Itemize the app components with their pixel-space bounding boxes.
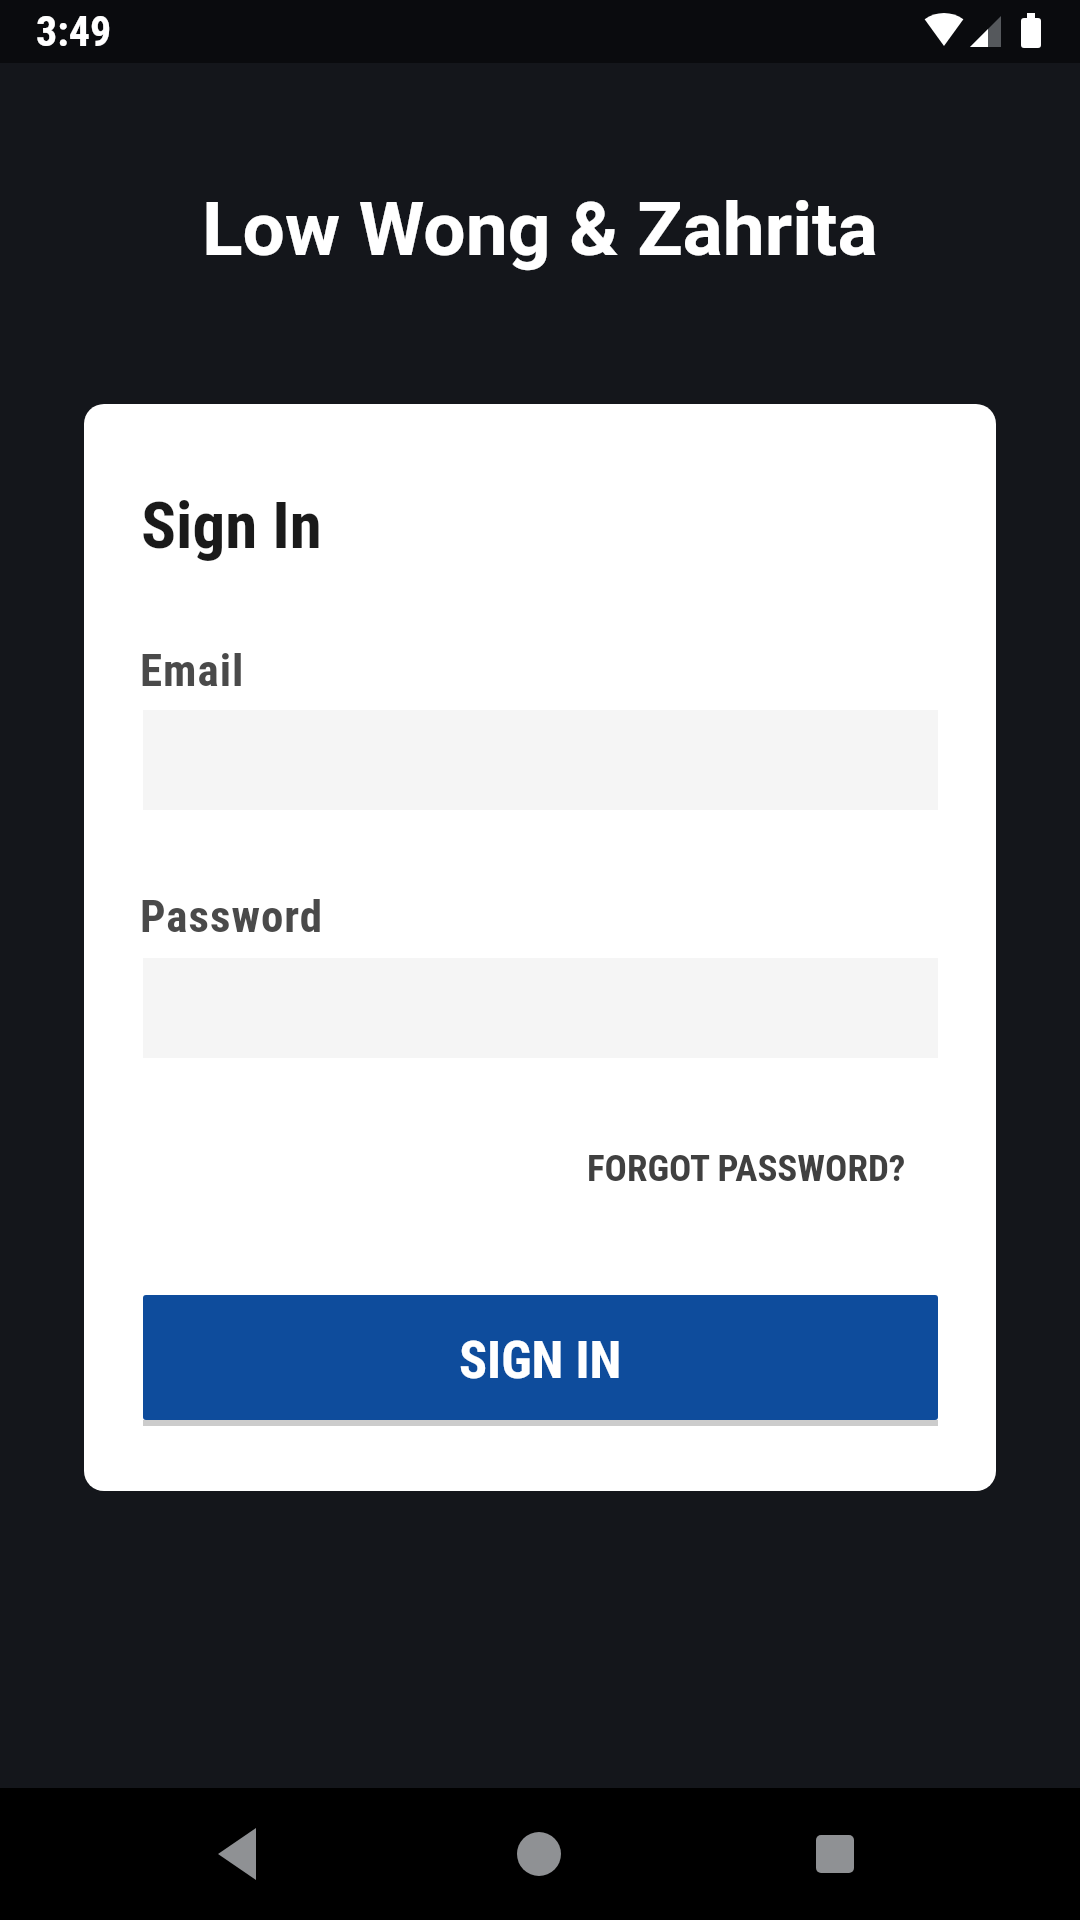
staticText: Sign In xyxy=(141,488,322,564)
staticText: FORGOT PASSWORD? xyxy=(587,1147,906,1190)
button[interactable] xyxy=(187,1804,287,1904)
button[interactable] xyxy=(489,1804,589,1904)
button[interactable] xyxy=(785,1804,885,1904)
staticText: 3:49 xyxy=(36,7,112,56)
staticText: SIGN IN xyxy=(459,1330,622,1391)
staticText: Password xyxy=(140,890,324,943)
staticText: Low Wong & Zahrita xyxy=(202,185,878,273)
button[interactable]: SIGN IN xyxy=(143,1295,938,1420)
staticText: Email xyxy=(140,644,245,697)
button[interactable]: FORGOT PASSWORD? xyxy=(143,1138,906,1198)
